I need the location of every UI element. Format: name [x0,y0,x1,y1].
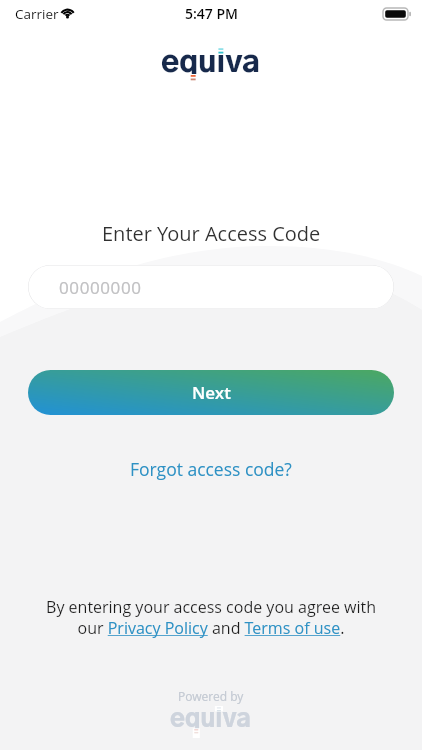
other: Battery full [383,8,408,20]
staticText: 00000000 [59,276,142,299]
staticText: Carrier [15,5,59,23]
staticText: By entering your access code you agree w… [46,596,376,639]
other: Wi-Fi signal [60,6,75,21]
staticText: 5:47 PM [185,4,238,23]
staticText: Powered by [178,688,244,704]
button[interactable]: 00000000 [28,265,394,309]
staticText: Forgot access code? [130,457,292,481]
staticText: Next [192,381,231,404]
staticText: equiva [170,707,251,732]
staticText: Enter Your Access Code [102,220,321,247]
button[interactable]: Forgot access code? [120,451,302,487]
staticText: equiva [161,48,260,78]
button[interactable]: Next [28,370,394,415]
